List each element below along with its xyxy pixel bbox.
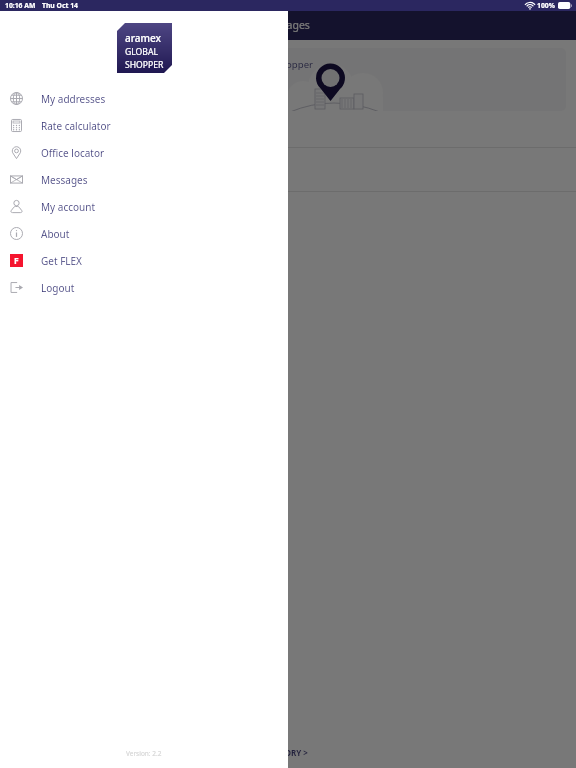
staticText: VIEW HISTORY >: [244, 747, 308, 758]
staticText: Office locator: [41, 146, 105, 160]
staticText: SHOPPER: [125, 59, 164, 71]
button[interactable]: Messages: [0, 166, 288, 193]
button[interactable]: Rate calculator: [0, 112, 288, 139]
staticText: Thu Oct 14: [42, 1, 78, 10]
staticText: Logout: [41, 281, 75, 295]
staticText: My packages: [246, 18, 310, 32]
staticText: My addresses: [41, 92, 106, 106]
staticText: 100%: [537, 1, 555, 10]
staticText: GLOBAL: [125, 46, 158, 58]
button[interactable]: Office locator: [0, 139, 288, 166]
staticText: Rate calculator: [41, 119, 111, 133]
button[interactable]: Global shopper: [10, 48, 566, 111]
staticText: My account: [41, 200, 95, 214]
button[interactable]: Close navigation drawer: [0, 0, 576, 768]
staticText: 10:16 AM: [5, 1, 36, 10]
button[interactable]: About: [0, 220, 288, 247]
button[interactable]: VIEW HISTORY >: [244, 747, 308, 758]
button[interactable]: F: [0, 247, 288, 274]
staticText: aramex: [125, 31, 161, 45]
button[interactable]: My addresses: [0, 85, 288, 112]
staticText: Messages: [41, 173, 88, 187]
staticText: Version: 2.2: [126, 749, 162, 758]
staticText: Global shopper: [244, 58, 314, 71]
button[interactable]: Logout: [0, 274, 288, 301]
staticText: About: [41, 227, 70, 241]
button[interactable]: My account: [0, 193, 288, 220]
staticText: Get FLEX: [41, 254, 82, 268]
staticText: F: [14, 255, 19, 267]
